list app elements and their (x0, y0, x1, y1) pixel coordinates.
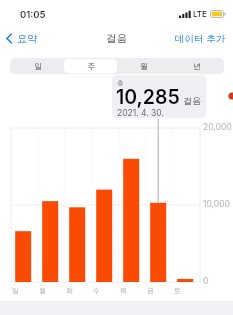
staticText: 요약 (17, 32, 37, 45)
staticText: 목 (120, 286, 127, 295)
staticText: 0 (203, 276, 209, 286)
button[interactable]: 주 (64, 59, 117, 73)
staticText: 금 (147, 286, 154, 295)
staticText: 월 (140, 61, 148, 71)
staticText: 01:05 (20, 9, 46, 20)
button[interactable]: 데이터 추가 (169, 32, 233, 47)
staticText: 10,285 (116, 85, 180, 109)
staticText: 화 (66, 286, 73, 295)
staticText: 월 (39, 286, 46, 295)
staticText: 총 (117, 79, 124, 87)
staticText: 수 (93, 286, 100, 295)
staticText: 10,000 (203, 199, 230, 209)
button[interactable]: 일 (11, 59, 64, 73)
staticText: 2021. 4. 30. (117, 108, 164, 118)
staticText: 걸음 (183, 95, 201, 106)
staticText: 일 (34, 61, 42, 71)
staticText: 주 (87, 61, 95, 71)
staticText: 토 (174, 286, 181, 295)
staticText: 년 (193, 61, 201, 71)
button[interactable]: 월 (117, 59, 170, 73)
button[interactable]: 년 (170, 59, 223, 73)
button[interactable]: 요약 (0, 30, 43, 47)
staticText: 20,000 (203, 122, 232, 132)
staticText: LTE (193, 9, 207, 19)
staticText: 일 (12, 286, 19, 295)
staticText: 걸음 (106, 32, 127, 45)
